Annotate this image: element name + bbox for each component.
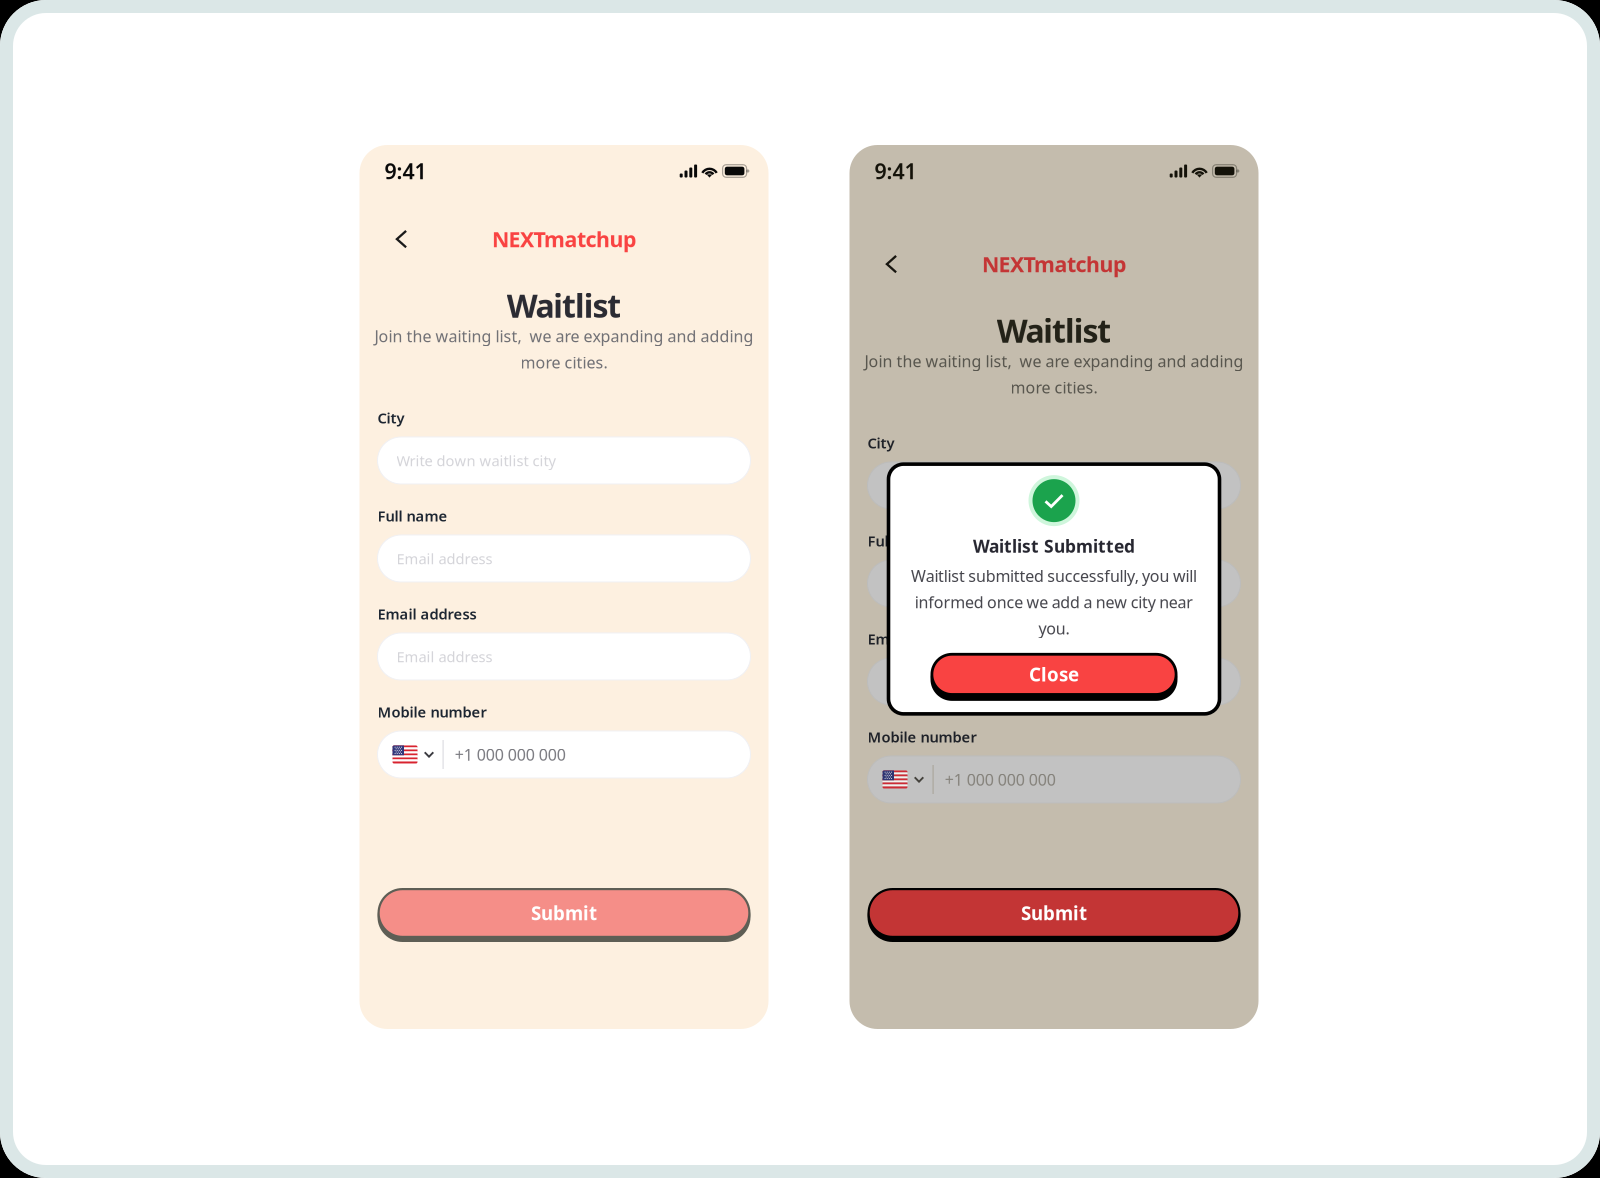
- staticText: Write down waitlist city: [886, 476, 1045, 495]
- staticText: Submit: [531, 901, 597, 925]
- button[interactable]: Submit: [377, 888, 750, 942]
- staticText: more cities.: [520, 352, 607, 373]
- staticText: Join the waiting list, we are expanding …: [864, 350, 1243, 372]
- staticText: Email address: [886, 672, 982, 691]
- button[interactable]: Submit: [867, 888, 1240, 942]
- staticText: Email address: [396, 549, 492, 568]
- staticText: City: [867, 433, 894, 452]
- staticText: Email address: [396, 647, 492, 666]
- staticText: 9:41: [874, 157, 916, 185]
- staticText: City: [377, 408, 404, 427]
- button[interactable]: +1 000 000 000: [867, 756, 1240, 803]
- staticText: Waitlist: [507, 284, 621, 326]
- staticText: Email address: [886, 574, 982, 593]
- staticText: Mobile number: [377, 702, 486, 721]
- button[interactable]: Close: [930, 653, 1177, 701]
- staticText: Join the waiting list, we are expanding …: [374, 325, 753, 347]
- button[interactable]: Email address: [867, 658, 1240, 705]
- staticText: Email address: [377, 604, 476, 623]
- staticText: Waitlist Submitted: [973, 535, 1135, 558]
- staticText: Write down waitlist city: [396, 451, 555, 470]
- staticText: NEXTmatchup: [982, 250, 1126, 278]
- staticText: Waitlist: [997, 309, 1111, 351]
- staticText: informed once we add a new city near: [915, 591, 1193, 613]
- button[interactable]: +1 000 000 000: [377, 731, 750, 778]
- staticText: 9:41: [384, 157, 426, 185]
- staticText: Full name: [867, 531, 937, 550]
- staticText: +1 000 000 000: [455, 744, 566, 765]
- button[interactable]: Email address: [377, 633, 750, 680]
- button[interactable]: Email address: [377, 535, 750, 582]
- staticText: more cities.: [1010, 377, 1097, 398]
- button[interactable]: Back: [874, 248, 908, 280]
- staticText: Close: [1029, 662, 1079, 687]
- staticText: Mobile number: [867, 727, 976, 746]
- staticText: Full name: [377, 506, 447, 525]
- staticText: +1 000 000 000: [945, 769, 1056, 790]
- button[interactable]: Write down waitlist city: [867, 462, 1240, 509]
- staticText: Email address: [867, 629, 966, 648]
- button[interactable]: Back: [384, 223, 418, 255]
- staticText: Submit: [1021, 901, 1087, 925]
- button[interactable]: Write down waitlist city: [377, 437, 750, 484]
- button[interactable]: Email address: [867, 560, 1240, 607]
- staticText: you.: [1038, 618, 1069, 639]
- staticText: Waitlist submitted successfully, you wil…: [911, 565, 1197, 586]
- staticText: NEXTmatchup: [492, 225, 636, 253]
